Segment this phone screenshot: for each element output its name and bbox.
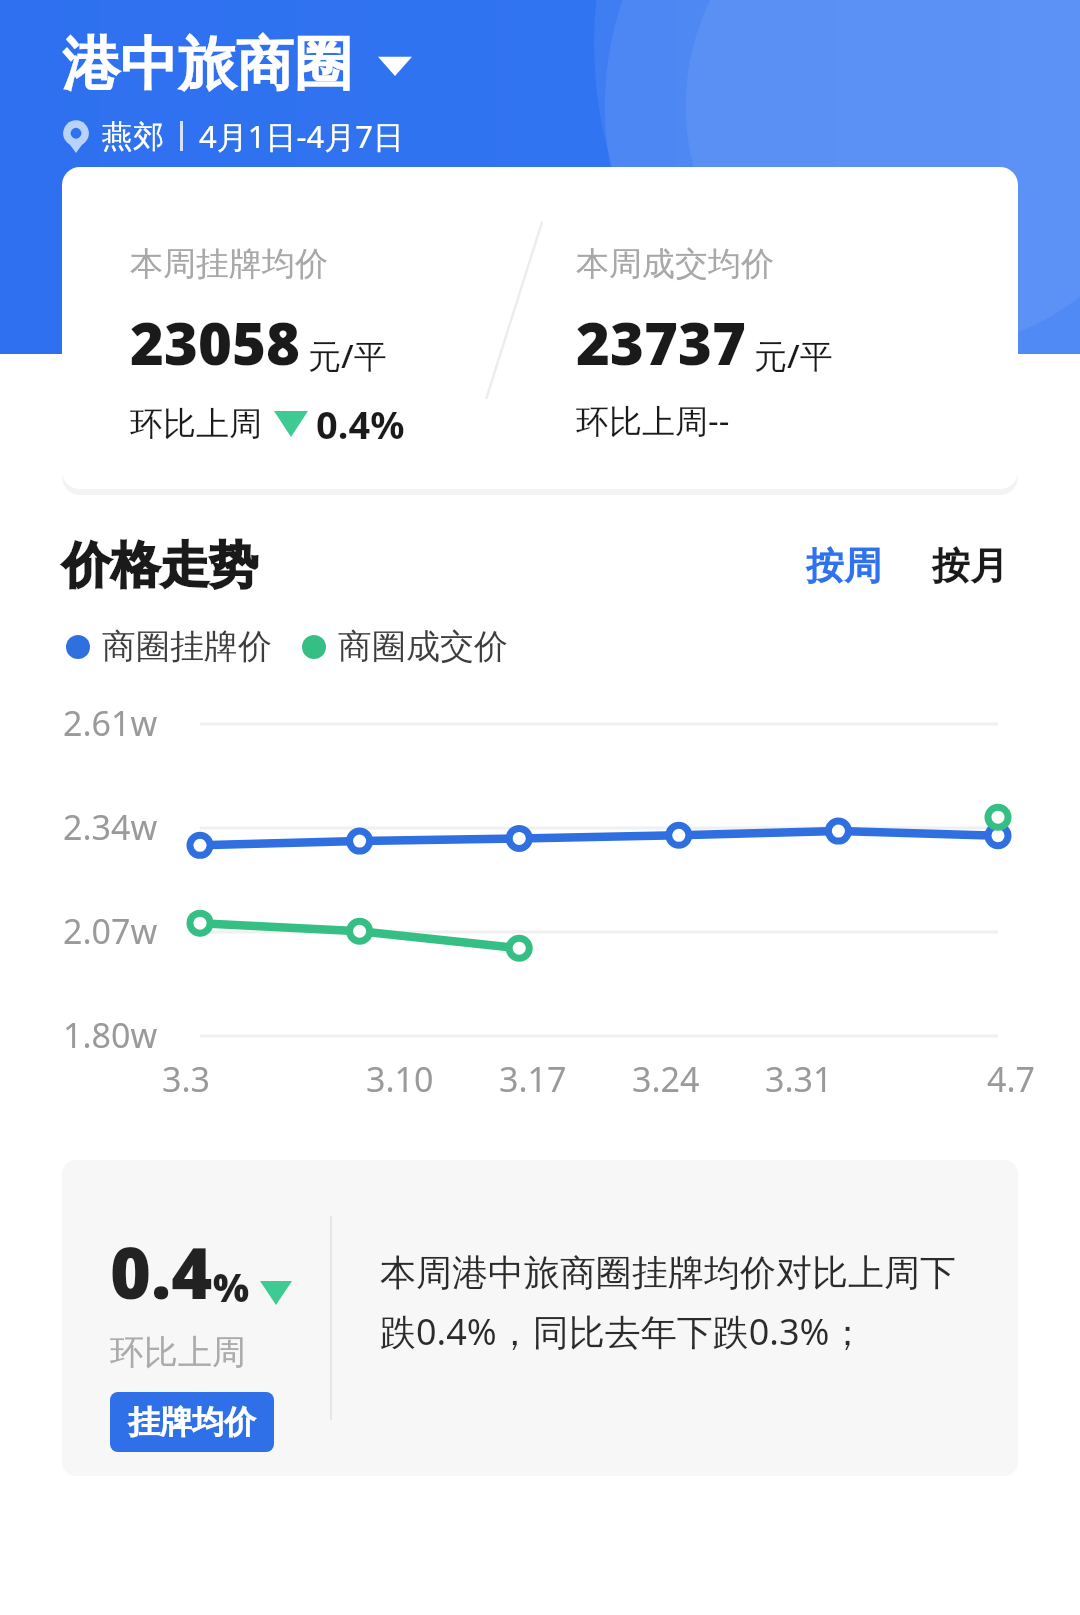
staticText: 4月1日-4月7日 (199, 115, 404, 157)
staticText: 燕郊 (102, 117, 164, 156)
staticText: 商圈成交价 (338, 625, 508, 668)
staticText: 1.80w (63, 1012, 158, 1058)
button[interactable]: 挂牌均价 (110, 1392, 274, 1452)
staticText: 2.34w (63, 804, 158, 850)
staticText: 元/平 (754, 333, 833, 378)
staticText: 环比上周 (110, 1331, 246, 1374)
staticText: 本周挂牌均价 (130, 243, 328, 285)
staticText: 港中旅商圈 (62, 28, 352, 101)
staticText: 挂牌均价 (128, 1402, 256, 1442)
staticText: 4.7 (987, 1056, 1036, 1102)
button[interactable]: 0.4 (62, 1160, 1018, 1476)
staticText: 价格走势 (62, 535, 258, 597)
staticText: 环比上周-- (576, 398, 730, 443)
button[interactable]: 按月 (922, 536, 1018, 596)
staticText: 本周港中旅商圈挂牌均价对比上周下跌0.4%，同比去年下跌0.3%； (380, 1250, 984, 1355)
staticText: % (213, 1261, 250, 1313)
staticText: 3.3 (162, 1056, 211, 1102)
staticText: 23058 (130, 303, 300, 382)
staticText: 2.07w (63, 908, 158, 954)
staticText: 按周 (806, 542, 882, 590)
staticText: 按月 (932, 542, 1008, 590)
staticText: 本周成交均价 (576, 243, 774, 285)
staticText: 23737 (576, 303, 746, 382)
button[interactable]: 选择商圈 (374, 44, 416, 86)
staticText: 0.4 (110, 1224, 213, 1319)
staticText: 3.31 (765, 1056, 833, 1102)
staticText: 商圈挂牌价 (102, 625, 272, 668)
staticText: 元/平 (308, 333, 387, 378)
staticText: 3.17 (499, 1056, 567, 1102)
button[interactable]: 按周 (796, 536, 892, 596)
staticText: 0.4% (316, 398, 405, 450)
button[interactable]: 本周挂牌均价 (62, 167, 1018, 489)
staticText: 2.61w (63, 700, 158, 746)
staticText: 环比上周 (130, 403, 262, 445)
staticText: 3.24 (632, 1056, 700, 1102)
staticText: 3.10 (366, 1056, 434, 1102)
